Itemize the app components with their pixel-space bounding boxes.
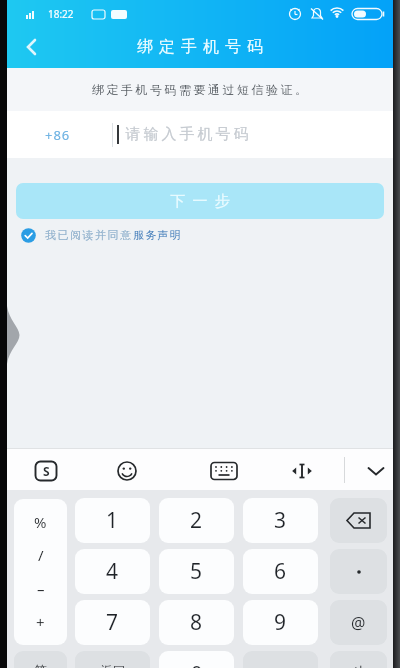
button[interactable]: 8 <box>159 600 234 645</box>
staticText: 绑定手机号码需要通过短信验证。 <box>92 82 310 97</box>
button[interactable]: 2 <box>159 498 234 543</box>
staticText: S <box>43 463 50 479</box>
staticText: 绑定手机号码 <box>134 37 266 57</box>
button[interactable] <box>7 111 394 158</box>
button[interactable]: 3 <box>243 498 318 543</box>
button[interactable] <box>208 458 240 484</box>
staticText: 0 <box>191 659 203 668</box>
button[interactable] <box>113 458 141 484</box>
button[interactable]: 下一步 <box>16 183 384 219</box>
button[interactable] <box>362 458 390 484</box>
staticText: % <box>34 512 47 532</box>
staticText: 返回 <box>101 663 125 668</box>
staticText: 服务声明 <box>133 228 181 242</box>
staticText: 7 <box>106 608 119 637</box>
staticText: 2 <box>190 506 203 535</box>
staticText: @ <box>351 612 366 634</box>
button[interactable]: ↵ <box>330 651 387 668</box>
staticText: – <box>37 579 45 599</box>
staticText: / <box>38 545 44 565</box>
staticText: + <box>36 612 45 632</box>
staticText: 9 <box>274 608 287 637</box>
staticText: 8 <box>190 608 203 637</box>
button[interactable]: 我已阅读并同意 <box>21 227 181 243</box>
staticText: 我已阅读并同意 <box>45 228 133 242</box>
button[interactable]: 1 <box>75 498 150 543</box>
button[interactable] <box>330 549 387 594</box>
button[interactable]: % <box>14 499 67 645</box>
staticText: 18:22 <box>48 7 74 21</box>
button[interactable] <box>288 458 316 484</box>
button[interactable]: 6 <box>243 549 318 594</box>
staticText: 请输入手机号码 <box>124 125 250 144</box>
button[interactable]: 符 <box>14 651 67 668</box>
staticText: 6 <box>274 557 287 586</box>
button[interactable]: 5 <box>159 549 234 594</box>
button[interactable]: 0 <box>159 651 234 668</box>
staticText: 1 <box>106 506 119 535</box>
button[interactable]: 7 <box>75 600 150 645</box>
button[interactable]: 返回 <box>75 651 150 668</box>
staticText: 下一步 <box>167 192 233 211</box>
button[interactable]: 9 <box>243 600 318 645</box>
staticText: +86 <box>45 126 71 144</box>
staticText: 符 <box>34 662 47 668</box>
staticText: 5 <box>190 557 203 586</box>
button[interactable]: 4 <box>75 549 150 594</box>
button[interactable]: @ <box>330 600 387 645</box>
staticText: ↵ <box>353 662 364 668</box>
button[interactable] <box>330 498 387 543</box>
staticText: 3 <box>274 506 287 535</box>
button[interactable]: S <box>32 458 60 484</box>
staticText: 4 <box>106 557 119 586</box>
button[interactable] <box>14 30 50 64</box>
